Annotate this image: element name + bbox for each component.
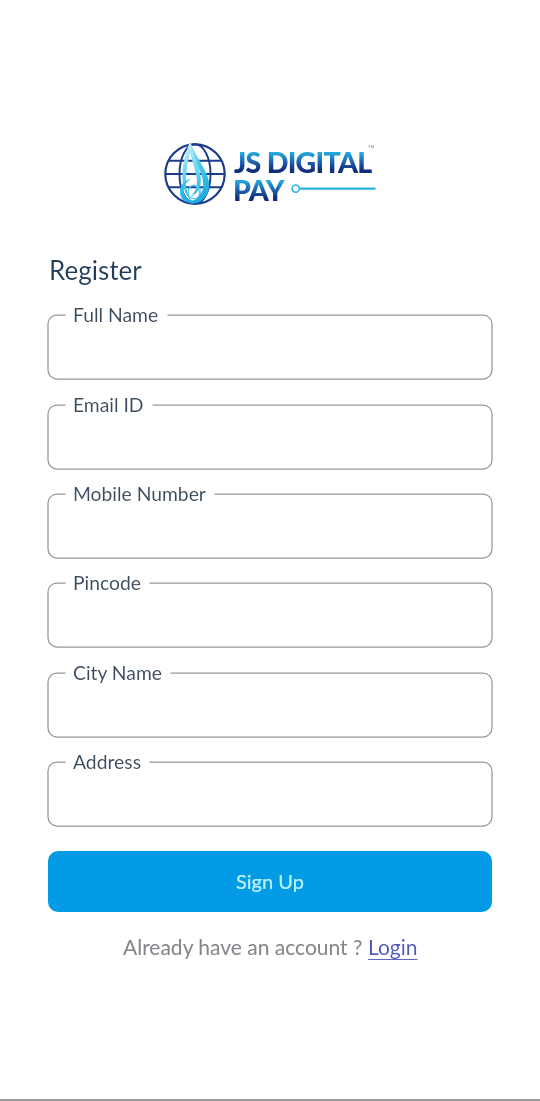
button[interactable]: Email ID — [48, 405, 492, 469]
staticText: PAY — [233, 173, 284, 207]
staticText: Already have an account ? — [123, 934, 368, 959]
other: JS Digital Pay logo — [163, 142, 227, 206]
staticText: Mobile Number — [73, 482, 206, 505]
button[interactable]: Login — [368, 934, 418, 959]
button[interactable]: Address — [48, 762, 492, 826]
staticText: Full Name — [73, 303, 159, 326]
button[interactable]: Mobile Number — [48, 494, 492, 558]
staticText: Register — [49, 254, 142, 285]
staticText: City Name — [73, 661, 162, 684]
button[interactable]: Pincode — [48, 583, 492, 647]
button[interactable]: Full Name — [48, 315, 492, 379]
staticText: Pincode — [73, 571, 141, 594]
staticText: ™ — [368, 143, 375, 154]
staticText: Email ID — [73, 393, 144, 416]
staticText: Address — [73, 750, 141, 773]
staticText: JS DIGITAL — [234, 145, 372, 179]
staticText: Sign Up — [236, 869, 304, 893]
button[interactable]: Sign Up — [48, 851, 492, 912]
button[interactable]: City Name — [48, 673, 492, 737]
